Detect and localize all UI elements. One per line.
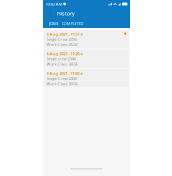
staticText: Single Crew 2404	[46, 76, 76, 81]
button[interactable]: 4 Aug 2021 - 11:51 a	[44, 30, 129, 48]
staticText: COMPLETED	[61, 21, 83, 26]
button[interactable]: Back	[46, 8, 55, 19]
button[interactable]: 4 Aug 2021 - 11:02 a	[44, 69, 129, 87]
button[interactable]: COMPLETED	[60, 19, 84, 28]
staticText: History	[57, 10, 75, 17]
staticText: Single crew 2344	[46, 56, 75, 61]
staticText: Work Class 34-56	[46, 61, 77, 67]
staticText: Work Class 30-02	[46, 81, 77, 86]
staticText: Single Crew 2494	[46, 36, 76, 42]
staticText: 10:42 AM	[45, 1, 62, 7]
staticText: 4 Aug 2021 - 11:51 a	[46, 31, 82, 37]
staticText: JOBS	[49, 21, 58, 26]
button[interactable]: JOBS	[46, 19, 60, 28]
staticText: Work Class 45-02	[46, 42, 77, 47]
button[interactable]: 4 Aug 2021 - 11:20 a	[44, 50, 129, 68]
staticText: 4 Aug 2021 - 11:20 a	[46, 51, 82, 56]
staticText: 4 Aug 2021 - 11:02 a	[46, 70, 82, 76]
